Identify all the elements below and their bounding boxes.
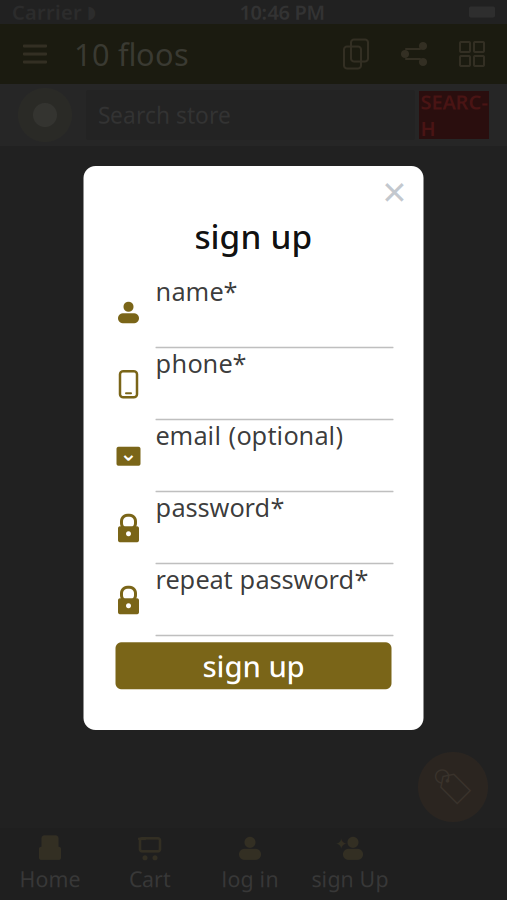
staticText: ◗ — [87, 2, 96, 22]
button[interactable]: Cart — [100, 833, 200, 895]
staticText: sign up — [202, 646, 304, 685]
staticText: ✦ — [335, 835, 347, 852]
staticText: Carrier — [12, 0, 82, 25]
button[interactable]: sign up — [115, 642, 391, 689]
button[interactable]: log in — [200, 833, 300, 895]
button[interactable]: Scan QR code — [457, 39, 487, 69]
staticText: 🏷 — [431, 767, 475, 807]
staticText: 10:46 PM — [239, 0, 325, 25]
staticText: 10 floos — [74, 34, 189, 74]
button[interactable]: Home — [0, 833, 100, 895]
staticText: Home — [19, 865, 80, 893]
staticText: repeat password* — [155, 562, 368, 596]
staticText: ⌄ — [119, 441, 137, 465]
staticText: SEARCH — [420, 88, 487, 141]
staticText: phone* — [155, 346, 246, 380]
staticText: Cart — [129, 865, 171, 893]
button[interactable]: Menu — [20, 39, 50, 69]
button[interactable]: SEARCH — [419, 91, 489, 139]
button[interactable]: Close — [375, 174, 413, 212]
staticText: sign Up — [311, 865, 388, 893]
staticText: sign up — [194, 214, 312, 258]
button[interactable]: Copy — [341, 39, 371, 69]
button[interactable]: Offers — [418, 752, 488, 822]
button[interactable]: Share — [399, 39, 429, 69]
staticText: log in — [221, 865, 278, 893]
staticText: email (optional) — [155, 418, 343, 452]
staticText: Search store — [98, 100, 231, 130]
button[interactable]: ✦ — [300, 833, 400, 895]
staticText: name* — [155, 274, 237, 308]
staticText: ✕ — [381, 175, 408, 211]
staticText: password* — [155, 490, 284, 524]
